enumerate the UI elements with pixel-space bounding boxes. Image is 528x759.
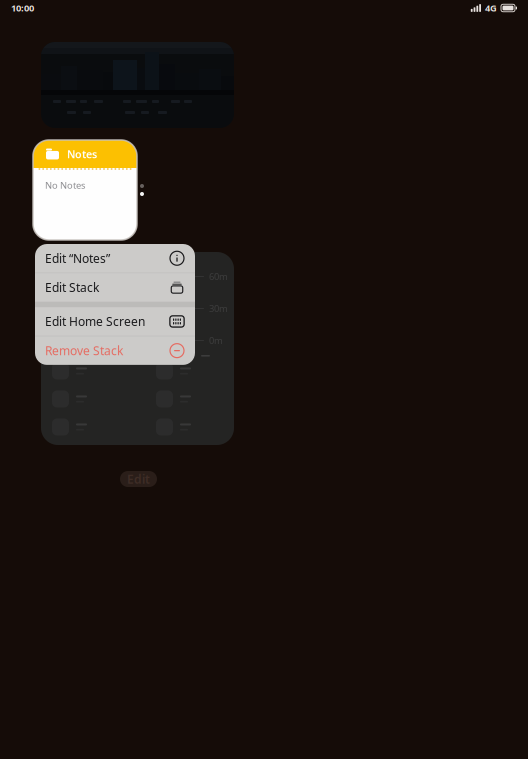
button[interactable]: Edit “Notes” [35,244,195,272]
staticText: Edit Home Screen [45,313,145,329]
button[interactable]: Edit Stack [35,273,195,302]
staticText: No Notes [45,179,85,191]
button[interactable]: Edit Home Screen [35,307,195,336]
staticText: Remove Stack [45,343,123,359]
staticText: Edit Stack [45,279,99,295]
staticText: Notes [67,147,97,161]
staticText: 30m [209,302,228,315]
staticText: Edit [127,471,150,487]
button[interactable]: Remove Stack [35,336,195,365]
staticText: Edit “Notes” [45,250,110,266]
staticText: 60m [209,270,228,283]
button[interactable]: Edit [120,471,157,487]
staticText: 4G [485,2,497,14]
staticText: 10:00 [11,2,34,14]
staticText: 0m [209,334,223,347]
